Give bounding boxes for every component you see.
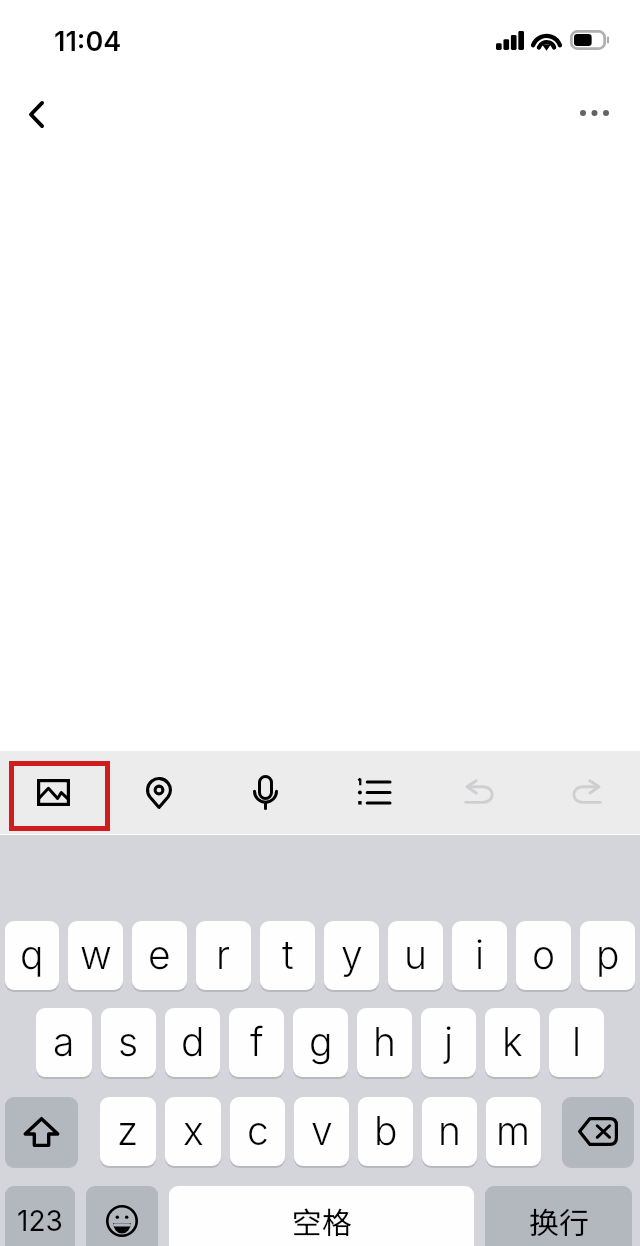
button[interactable]: n <box>422 1097 477 1166</box>
staticText: n <box>438 1107 461 1154</box>
button[interactable]: q <box>5 921 59 990</box>
staticText: q <box>20 931 44 978</box>
staticText: 11:04 <box>54 25 122 58</box>
button[interactable]: h <box>357 1008 412 1077</box>
button[interactable]: l <box>549 1008 604 1077</box>
button[interactable]: Redo <box>533 751 640 834</box>
staticText: l <box>572 1018 582 1065</box>
staticText: y <box>341 931 363 978</box>
button[interactable]: t <box>260 921 315 990</box>
button[interactable]: Insert image <box>0 751 106 834</box>
button[interactable]: o <box>516 921 571 990</box>
button[interactable]: i <box>452 921 507 990</box>
staticText: h <box>373 1018 396 1065</box>
button[interactable]: p <box>580 921 635 990</box>
staticText: z <box>117 1107 139 1154</box>
button[interactable]: 123 <box>5 1186 75 1246</box>
button[interactable]: g <box>293 1008 348 1077</box>
staticText: x <box>183 1107 204 1154</box>
staticText: e <box>148 931 171 978</box>
staticText: s <box>118 1018 139 1065</box>
button[interactable]: Bulleted list <box>319 751 426 834</box>
staticText: c <box>247 1107 269 1154</box>
staticText: a <box>53 1018 75 1065</box>
staticText: r <box>216 931 231 978</box>
staticText: k <box>502 1018 523 1065</box>
staticText: d <box>181 1018 205 1065</box>
staticText: i <box>475 931 485 978</box>
button[interactable]: k <box>485 1008 540 1077</box>
button[interactable]: Undo <box>426 751 533 834</box>
staticText: v <box>311 1107 333 1154</box>
staticText: t <box>282 931 294 978</box>
staticText: 123 <box>17 1204 63 1238</box>
button[interactable]: f <box>229 1008 284 1077</box>
button[interactable]: Backspace <box>562 1097 634 1166</box>
button[interactable]: b <box>358 1097 413 1166</box>
button[interactable]: m <box>486 1097 541 1166</box>
button[interactable]: Location <box>106 751 212 834</box>
staticText: g <box>309 1018 333 1065</box>
staticText: b <box>374 1107 398 1154</box>
staticText: 换行 <box>529 1199 589 1242</box>
button[interactable]: r <box>196 921 251 990</box>
button[interactable]: s <box>101 1008 156 1077</box>
button[interactable]: Shift <box>5 1097 78 1166</box>
button[interactable]: Back <box>1 75 71 155</box>
staticText: 空格 <box>292 1199 352 1242</box>
button[interactable]: j <box>421 1008 476 1077</box>
staticText: m <box>496 1107 531 1154</box>
button[interactable]: v <box>294 1097 349 1166</box>
button[interactable]: Emoji <box>86 1186 158 1246</box>
button[interactable]: c <box>230 1097 285 1166</box>
button[interactable]: z <box>100 1097 156 1166</box>
button[interactable]: d <box>165 1008 220 1077</box>
staticText: o <box>532 931 556 978</box>
button[interactable]: a <box>36 1008 92 1077</box>
button[interactable]: Return <box>485 1186 632 1246</box>
staticText: j <box>444 1018 454 1065</box>
staticText: f <box>250 1018 264 1065</box>
staticText: p <box>596 931 620 978</box>
button[interactable]: x <box>165 1097 221 1166</box>
staticText: u <box>404 931 427 978</box>
button[interactable]: Space <box>169 1186 474 1246</box>
button[interactable]: w <box>68 921 123 990</box>
button[interactable]: u <box>388 921 443 990</box>
button[interactable]: More options <box>559 75 629 155</box>
button[interactable]: Voice input <box>212 751 319 834</box>
button[interactable]: y <box>324 921 379 990</box>
staticText: w <box>80 931 112 978</box>
button[interactable]: e <box>132 921 187 990</box>
